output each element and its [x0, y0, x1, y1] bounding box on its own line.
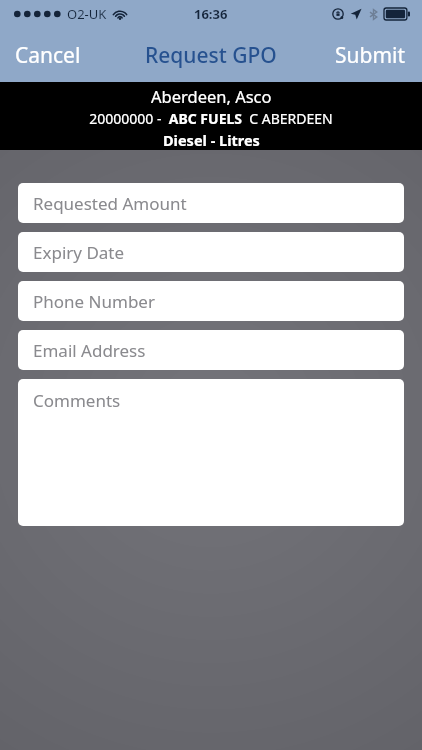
button[interactable]: Comments — [18, 379, 404, 526]
button[interactable]: Phone Number — [18, 281, 404, 321]
staticText: Requested Amount — [33, 192, 187, 215]
staticText: Request GPO — [145, 41, 277, 70]
staticText: Cancel — [15, 41, 81, 70]
button[interactable]: Expiry Date — [18, 232, 404, 272]
staticText: Submit — [335, 41, 406, 70]
button[interactable]: Submit — [323, 35, 422, 76]
staticText: 20000000 - ABC FUELS C ABERDEEN — [89, 109, 333, 128]
button[interactable]: Email Address — [18, 330, 404, 370]
staticText: Email Address — [33, 339, 146, 362]
staticText: O2-UK — [67, 5, 107, 23]
staticText: Phone Number — [33, 290, 155, 313]
staticText: Diesel - Litres — [163, 130, 260, 150]
button[interactable]: Requested Amount — [18, 183, 404, 223]
button[interactable]: Cancel — [0, 35, 93, 76]
staticText: 16:36 — [194, 5, 228, 23]
staticText: Aberdeen, Asco — [151, 85, 272, 107]
staticText: Expiry Date — [33, 241, 125, 264]
staticText: Comments — [33, 389, 121, 412]
